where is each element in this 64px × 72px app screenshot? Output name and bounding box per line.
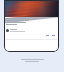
- button[interactable]: [4, 0, 59, 52]
